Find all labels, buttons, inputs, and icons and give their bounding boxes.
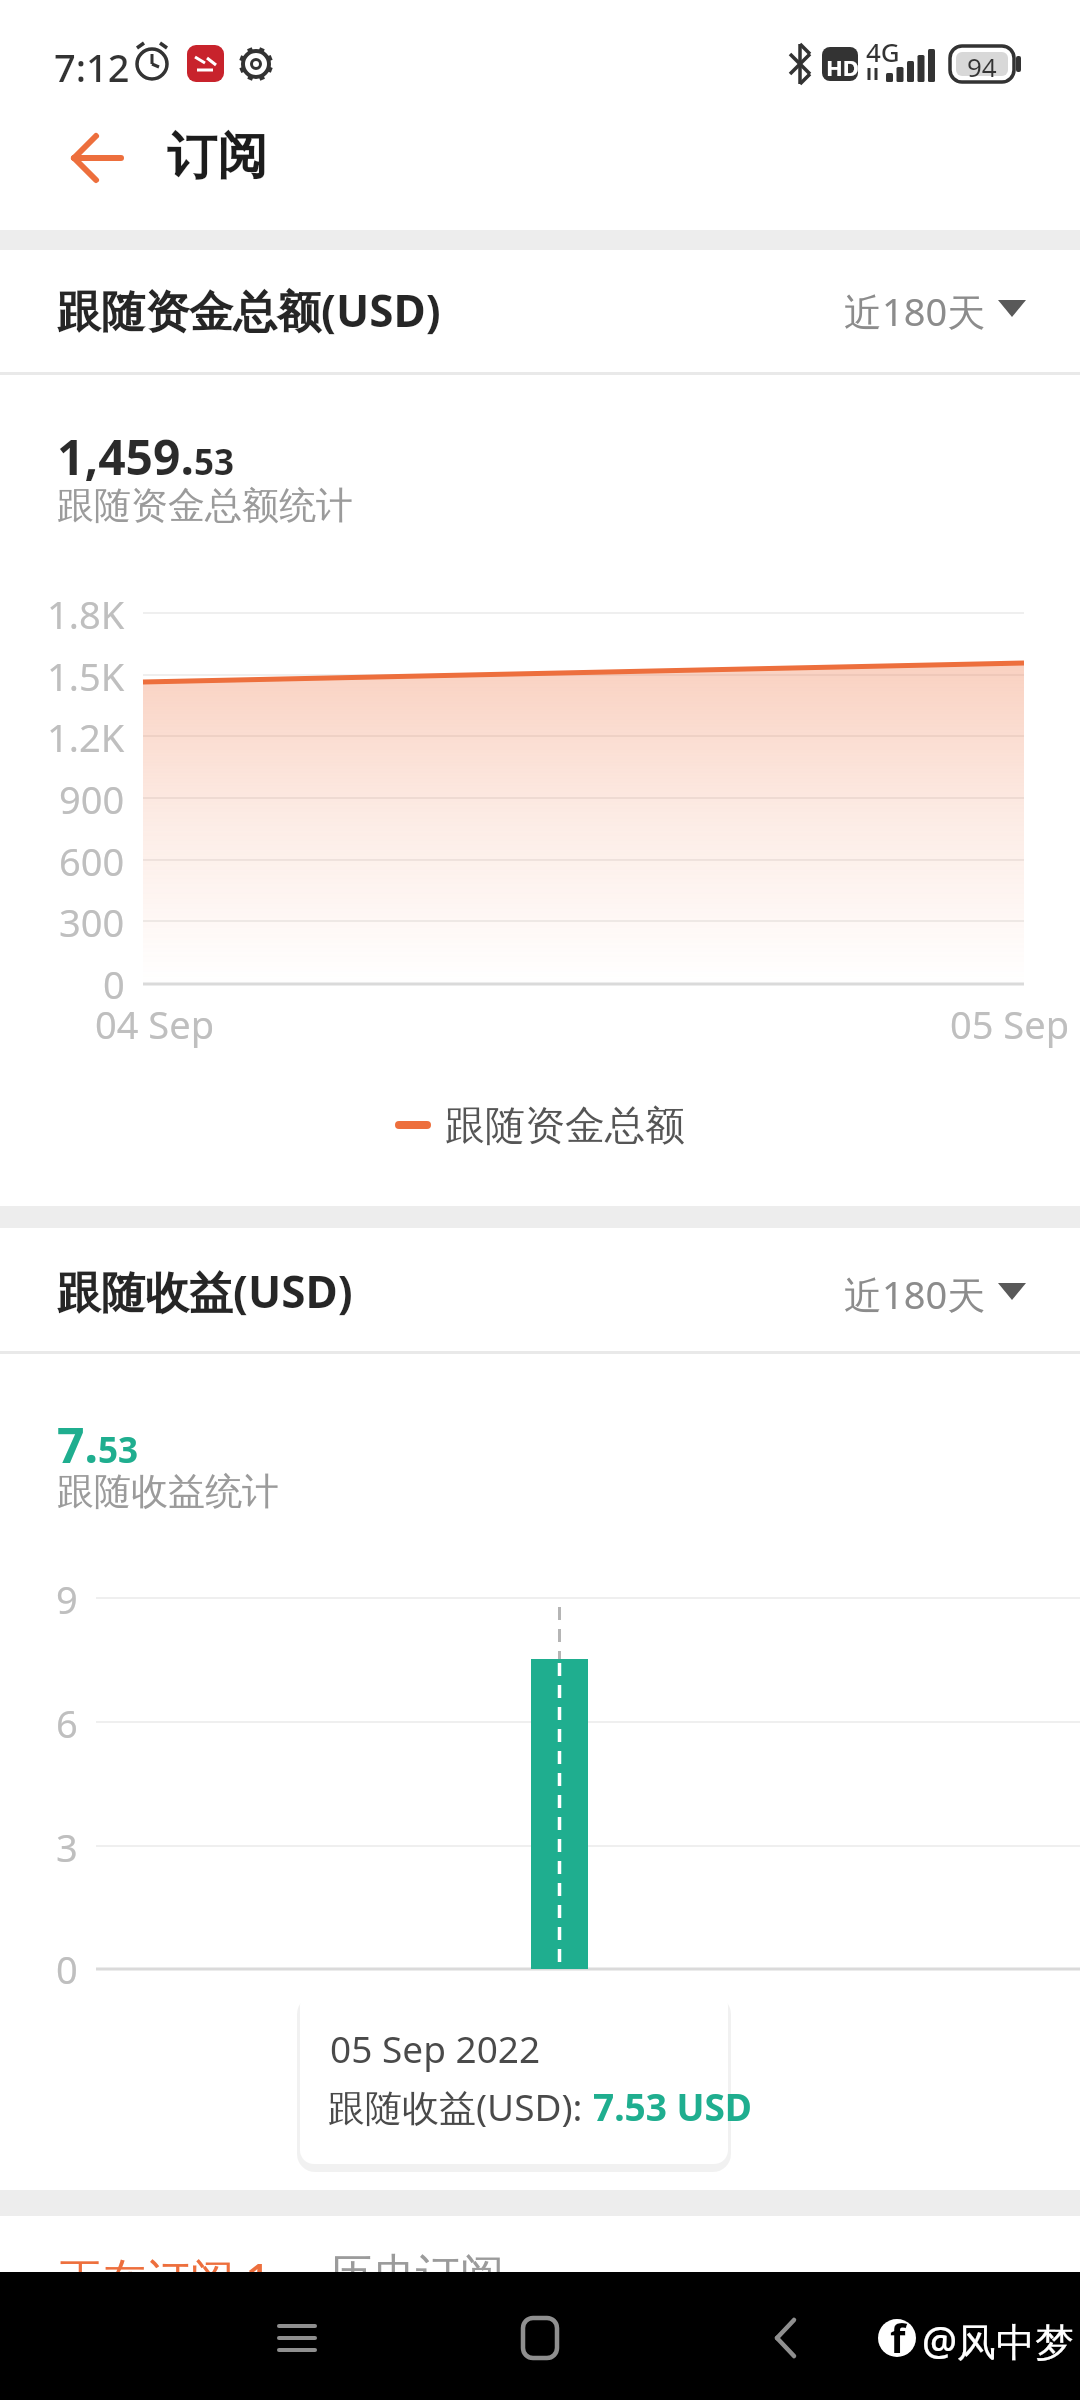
staticText: 近180天 bbox=[844, 285, 986, 337]
staticText: @风中梦 bbox=[922, 2314, 1075, 2367]
button[interactable]: 历史订阅 bbox=[320, 2235, 510, 2295]
staticText: HD bbox=[826, 52, 859, 82]
staticText: 7.53 USD bbox=[593, 2081, 752, 2131]
staticText: 94 bbox=[967, 49, 997, 84]
staticText: 1.2K bbox=[47, 711, 125, 763]
staticText: 跟随资金总额 bbox=[445, 1100, 685, 1150]
staticText: f bbox=[890, 2310, 906, 2364]
staticText: 正在订阅 1 bbox=[58, 2248, 271, 2308]
staticText: 1,459. bbox=[57, 424, 194, 489]
staticText: 订阅 bbox=[167, 125, 267, 188]
staticText: 7:12 bbox=[54, 41, 130, 93]
staticText: 6 bbox=[56, 1697, 78, 1749]
button[interactable] bbox=[840, 270, 1040, 340]
staticText: 05 Sep 2022 bbox=[330, 2023, 541, 2073]
staticText: 跟随收益(USD): bbox=[328, 2081, 593, 2132]
staticText: 900 bbox=[59, 773, 125, 825]
staticText: 53 bbox=[98, 1426, 139, 1474]
staticText: 600 bbox=[59, 835, 125, 887]
staticText: 跟随收益(USD) bbox=[57, 1261, 353, 1321]
staticText: 300 bbox=[59, 896, 125, 948]
button[interactable] bbox=[360, 2272, 720, 2400]
button[interactable] bbox=[720, 2272, 1080, 2400]
staticText: 05 Sep bbox=[950, 998, 1070, 1050]
staticText: 3 bbox=[56, 1821, 78, 1873]
button[interactable] bbox=[60, 125, 135, 195]
staticText: 1.5K bbox=[47, 650, 125, 702]
staticText: 0 bbox=[103, 958, 125, 1010]
staticText: 1.8K bbox=[47, 588, 125, 640]
staticText: 跟随收益统计 bbox=[57, 1468, 279, 1515]
staticText: 4G bbox=[866, 34, 900, 69]
staticText: 0 bbox=[56, 1943, 78, 1995]
button[interactable] bbox=[0, 2272, 360, 2400]
button[interactable]: 正在订阅 1 bbox=[50, 2235, 265, 2295]
staticText: 9 bbox=[56, 1573, 78, 1625]
staticText: 历史订阅 bbox=[328, 2248, 504, 2303]
button[interactable] bbox=[840, 1255, 1040, 1325]
staticText: 近180天 bbox=[844, 1268, 986, 1320]
staticText: 7. bbox=[57, 1412, 98, 1477]
staticText: 跟随资金总额(USD) bbox=[57, 280, 441, 340]
staticText: 53 bbox=[194, 438, 235, 486]
staticText: 04 Sep bbox=[95, 998, 215, 1050]
staticText: 跟随资金总额统计 bbox=[57, 482, 353, 529]
